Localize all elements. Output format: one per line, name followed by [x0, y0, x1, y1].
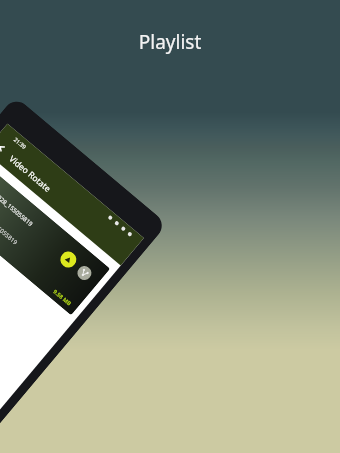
staticText: 9.58 MB [52, 288, 73, 307]
button[interactable]: Play [57, 248, 80, 271]
staticText: Video Rotate [7, 153, 53, 195]
staticText: VID_20200928_155055819 [0, 193, 19, 247]
staticText: 21:39 [12, 136, 28, 151]
button[interactable]: Share [75, 263, 94, 283]
button[interactable]: VID_20200928_155055819 [0, 162, 110, 315]
staticText: VID_20200928_155055819 [0, 174, 34, 228]
staticText: Playlist [0, 29, 340, 55]
